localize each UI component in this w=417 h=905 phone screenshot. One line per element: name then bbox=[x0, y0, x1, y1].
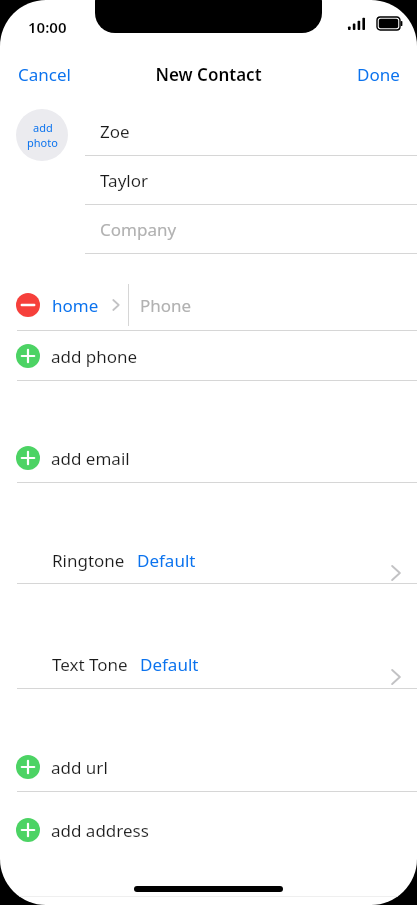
staticText: photo bbox=[27, 135, 58, 150]
staticText: Ringtone bbox=[52, 549, 125, 572]
staticText: home bbox=[52, 294, 99, 317]
staticText: add bbox=[33, 120, 53, 135]
staticText: 10:00 bbox=[28, 17, 67, 37]
staticText: Cancel bbox=[18, 63, 71, 86]
button[interactable]: Zoe bbox=[85, 108, 417, 155]
staticText: Text Tone bbox=[52, 653, 128, 676]
button[interactable]: Taylor bbox=[85, 156, 417, 204]
button[interactable]: add email bbox=[0, 434, 417, 482]
staticText: Default bbox=[140, 653, 199, 676]
button[interactable]: add phone bbox=[0, 331, 417, 380]
button[interactable]: home bbox=[45, 285, 128, 325]
staticText: Company bbox=[100, 218, 177, 241]
button[interactable]: Text Tone bbox=[0, 641, 417, 687]
staticText: Zoe bbox=[100, 120, 130, 143]
staticText: Taylor bbox=[100, 169, 148, 192]
button[interactable]: add bbox=[16, 109, 68, 161]
staticText: add phone bbox=[51, 345, 138, 368]
button[interactable]: Done bbox=[337, 58, 407, 90]
staticText: Default bbox=[137, 549, 196, 572]
button[interactable]: Cancel bbox=[8, 58, 88, 90]
staticText: add address bbox=[51, 819, 149, 842]
button[interactable]: add address bbox=[0, 806, 417, 854]
staticText: add url bbox=[51, 756, 108, 779]
button[interactable]: Remove phone bbox=[16, 293, 40, 317]
staticText: Done bbox=[357, 63, 400, 86]
button[interactable]: add url bbox=[0, 743, 417, 791]
staticText: New Contact bbox=[155, 63, 262, 86]
button[interactable]: Ringtone bbox=[0, 537, 417, 583]
staticText: add email bbox=[51, 447, 130, 470]
button[interactable]: Phone bbox=[129, 284, 417, 326]
button[interactable]: Company bbox=[85, 205, 417, 253]
staticText: Phone bbox=[140, 294, 192, 317]
